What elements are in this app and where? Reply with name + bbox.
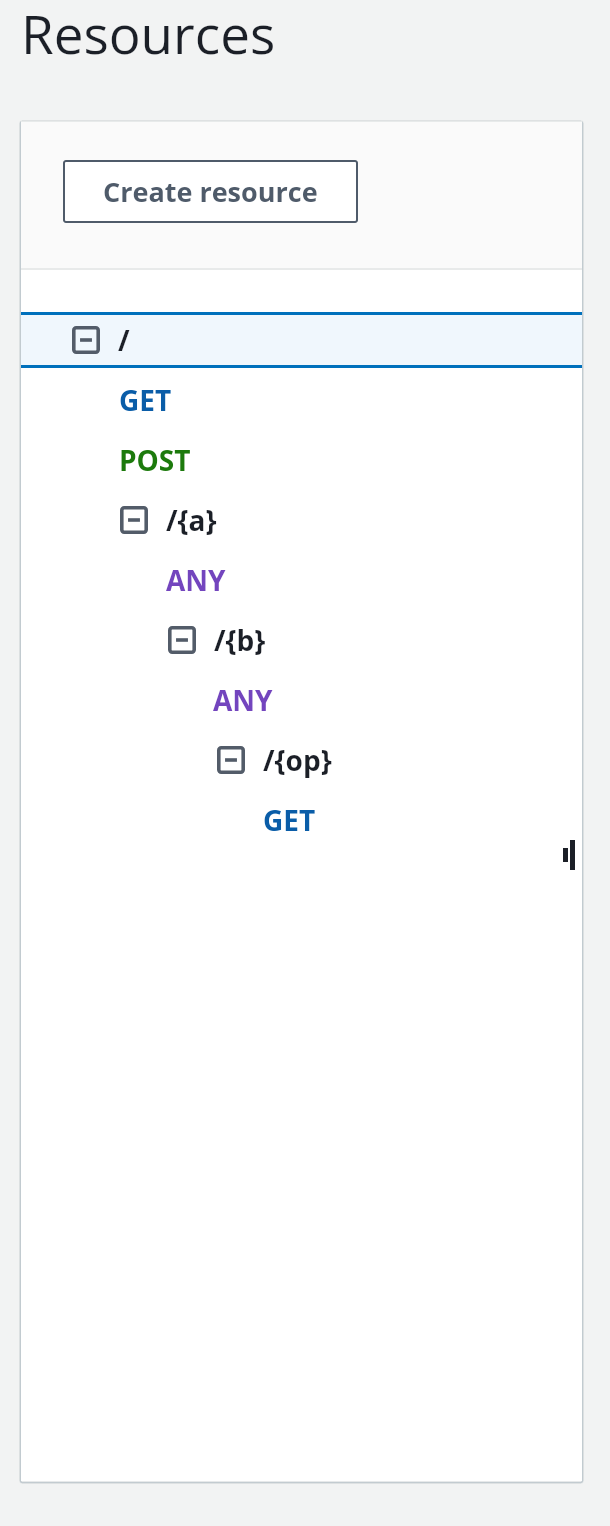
staticText: Create resource	[103, 173, 318, 210]
button[interactable]: Collapse node	[21, 730, 582, 790]
button[interactable]: GET	[21, 790, 582, 850]
staticText: /{a}	[166, 501, 217, 539]
button[interactable]: GET	[21, 370, 582, 430]
button[interactable]: Collapse node	[21, 490, 582, 550]
other: Collapse node	[168, 626, 196, 654]
other: Collapse node	[120, 506, 148, 534]
staticText: POST	[119, 441, 191, 479]
staticText: ANY	[213, 681, 273, 719]
other: Collapse node	[72, 326, 100, 354]
button[interactable]: Collapse node	[21, 610, 582, 670]
button[interactable]: POST	[21, 430, 582, 490]
staticText: /{b}	[214, 621, 266, 659]
button[interactable]: ANY	[21, 670, 582, 730]
staticText: GET	[119, 381, 172, 419]
button[interactable]: Collapse node	[21, 310, 582, 370]
button[interactable]: ANY	[21, 550, 582, 610]
other: Collapse node	[217, 746, 245, 774]
staticText: /	[118, 321, 130, 359]
staticText: Resources	[21, 0, 276, 69]
button[interactable]: Create resource	[63, 160, 358, 223]
staticText: ANY	[166, 561, 226, 599]
staticText: GET	[263, 801, 316, 839]
button[interactable]: Resize panel	[560, 836, 582, 874]
staticText: /{op}	[263, 741, 332, 779]
